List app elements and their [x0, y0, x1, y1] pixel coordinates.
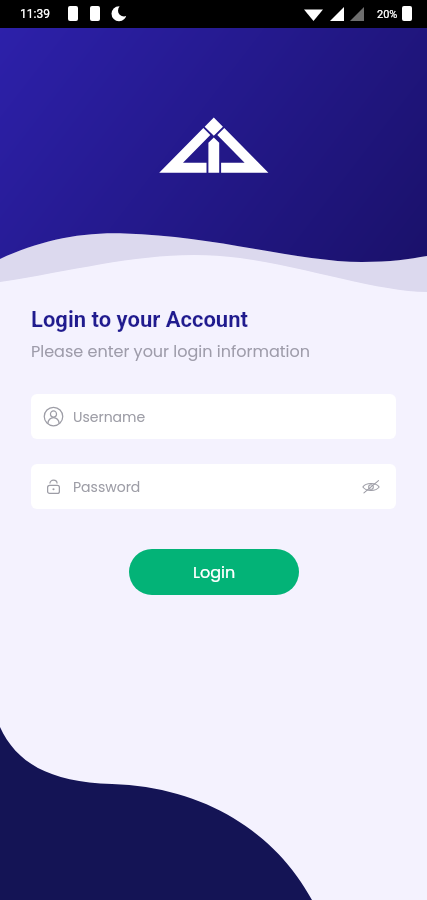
staticText: Login to your Account: [31, 307, 248, 333]
staticText: Login: [193, 561, 236, 583]
staticText: Please enter your login information: [31, 340, 310, 362]
staticText: Password: [73, 477, 141, 497]
button[interactable]: Password: [31, 464, 396, 509]
button[interactable]: Username: [31, 394, 396, 439]
staticText: 11:39: [20, 7, 50, 21]
staticText: 20%: [377, 8, 398, 21]
staticText: Username: [73, 407, 146, 427]
button[interactable]: Show password: [360, 476, 382, 498]
button[interactable]: Login: [129, 549, 299, 595]
